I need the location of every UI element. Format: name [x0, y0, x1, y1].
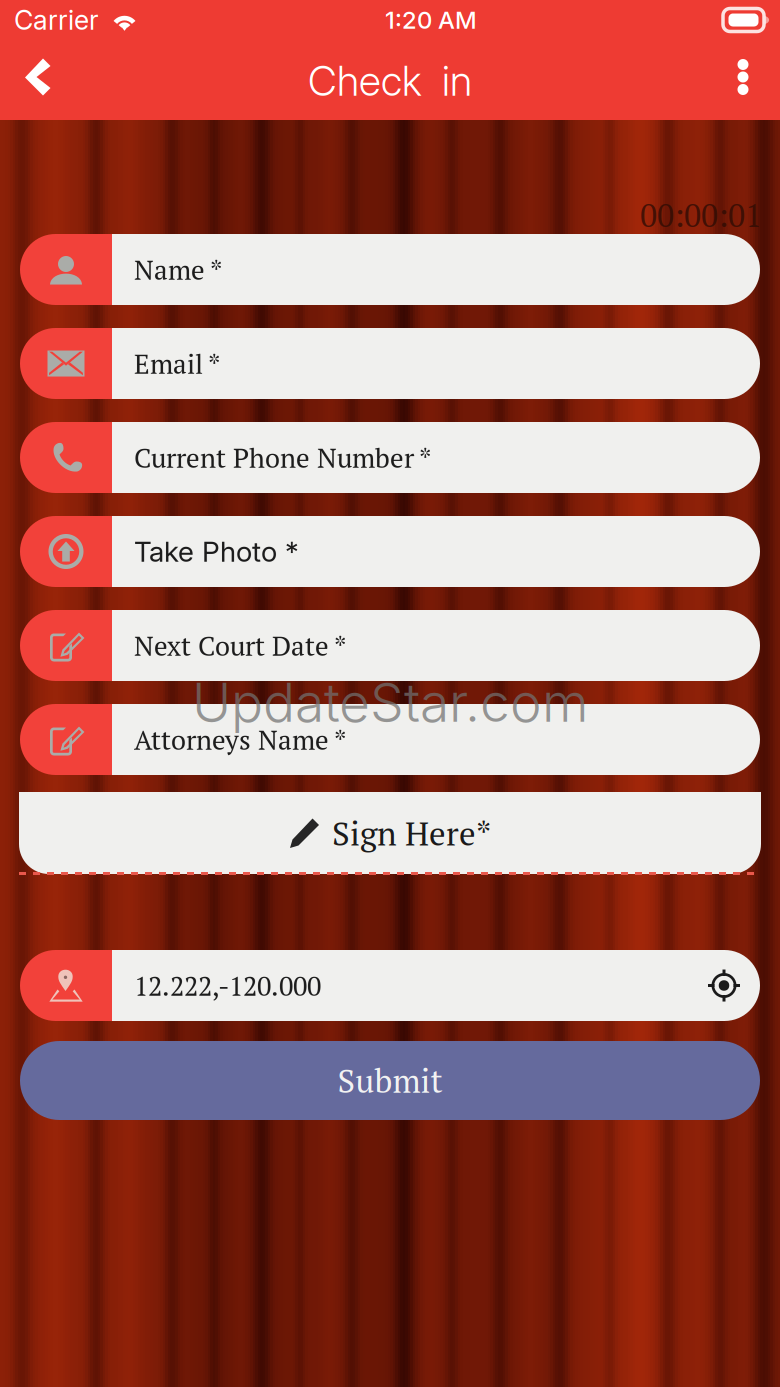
staticText: 12.222,-120.000: [134, 968, 321, 1003]
button[interactable]: Current Phone Number *: [20, 422, 760, 493]
staticText: Email *: [134, 346, 221, 381]
staticText: Attorneys Name *: [134, 722, 347, 757]
button[interactable]: Attorneys Name *: [20, 704, 760, 775]
button[interactable]: Next Court Date *: [20, 610, 760, 681]
button[interactable]: Email *: [20, 328, 760, 399]
button[interactable]: Back: [0, 44, 72, 120]
staticText: 1:20 AM: [385, 5, 477, 34]
staticText: Next Court Date *: [134, 628, 347, 663]
button[interactable]: Name *: [20, 234, 760, 305]
staticText: Submit: [337, 1059, 442, 1102]
staticText: 00:00:01: [640, 194, 762, 236]
staticText: Carrier: [14, 4, 99, 36]
staticText: Sign Here*: [332, 811, 491, 855]
staticText: Take Photo *: [134, 535, 299, 568]
button[interactable]: Sign Here*: [19, 792, 761, 874]
staticText: UpdateStar.com: [192, 670, 589, 734]
staticText: Current Phone Number *: [134, 440, 432, 475]
button[interactable]: Submit: [20, 1041, 760, 1120]
button[interactable]: More options: [708, 44, 780, 120]
button[interactable]: 12.222,-120.000: [20, 950, 760, 1021]
staticText: Check in: [308, 56, 472, 106]
button[interactable]: Take Photo *: [20, 516, 760, 587]
staticText: Name *: [134, 252, 223, 287]
